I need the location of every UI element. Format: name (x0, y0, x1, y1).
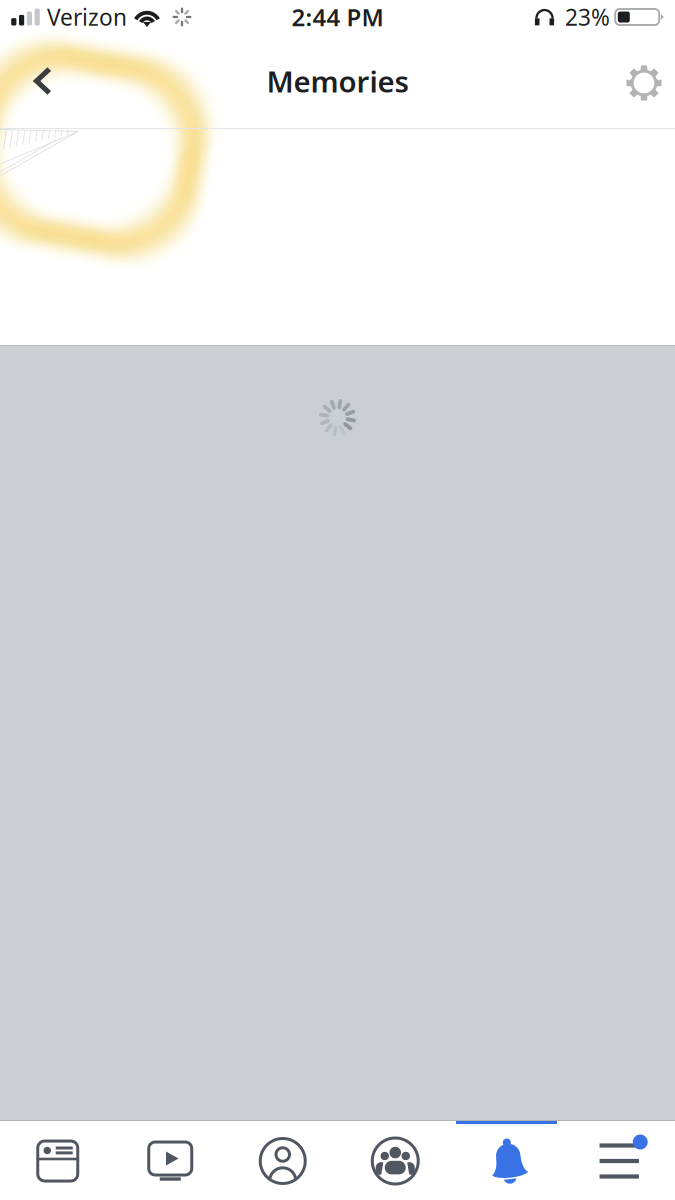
button[interactable]: Profile (226, 1121, 339, 1200)
button[interactable]: News Feed (1, 1121, 114, 1200)
staticText: 2:44 PM (291, 1, 383, 33)
button[interactable]: Watch (114, 1121, 226, 1200)
button[interactable]: Settings (613, 36, 675, 126)
button[interactable]: Groups (339, 1121, 451, 1200)
staticText: Verizon (47, 2, 127, 32)
staticText: 23% (565, 2, 610, 32)
button[interactable]: Menu (564, 1121, 675, 1200)
button[interactable]: Notifications (451, 1121, 564, 1200)
button[interactable]: Back (12, 36, 74, 126)
staticText: Memories (266, 61, 408, 100)
